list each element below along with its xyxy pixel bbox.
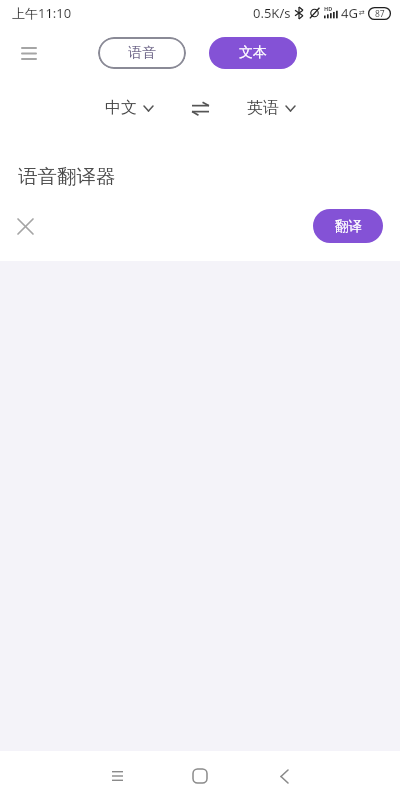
button[interactable]: Recent apps [93,752,141,800]
staticText: 87 [375,8,385,20]
staticText: 0.5K/s [253,4,291,22]
button[interactable]: Menu [10,37,47,69]
staticText: 中文 [105,98,137,118]
staticText: 语音翻译器 [18,164,116,189]
staticText: HD [324,5,333,12]
staticText: 语音 [128,44,156,62]
button[interactable]: 英语 [247,96,295,120]
staticText: 上午11:10 [12,4,72,22]
staticText: 文本 [239,44,267,62]
button[interactable]: 文本 [209,37,297,69]
staticText: ⇄ [359,9,365,17]
button[interactable]: Back [260,752,308,800]
staticText: 4G [341,4,358,22]
button[interactable]: Clear text [7,209,43,243]
button[interactable]: 中文 [105,96,153,120]
staticText: 翻译 [335,218,362,235]
button[interactable]: Swap languages [185,93,215,123]
button[interactable]: 翻译 [313,209,383,243]
button[interactable]: Home [176,752,224,800]
button[interactable]: 语音 [98,37,186,69]
staticText: 英语 [247,98,279,118]
